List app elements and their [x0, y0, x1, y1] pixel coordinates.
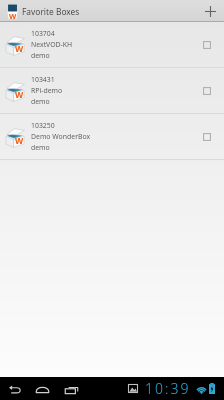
staticText: 10:39	[145, 379, 191, 398]
staticText: demo	[31, 51, 50, 60]
button[interactable]: Select 103704	[196, 34, 218, 56]
staticText: demo	[31, 143, 50, 152]
staticText: 103704	[31, 29, 55, 38]
staticText: W	[15, 43, 24, 55]
staticText: NextVOD-KH	[31, 40, 73, 49]
button[interactable]: W	[0, 22, 224, 68]
staticText: demo	[31, 97, 50, 106]
button[interactable]: Recent apps	[63, 379, 79, 399]
button[interactable]: Add favorite box	[199, 0, 221, 22]
button[interactable]: W	[0, 68, 224, 114]
button[interactable]: Back	[7, 379, 23, 399]
staticText: 103431	[31, 75, 55, 84]
button[interactable]: Select 103431	[196, 80, 218, 102]
staticText: 103250	[31, 121, 55, 130]
staticText: W	[15, 89, 24, 101]
button[interactable]: W	[0, 114, 224, 160]
staticText: W	[9, 11, 17, 21]
staticText: Favorite Boxes	[22, 6, 80, 17]
button[interactable]: Home	[34, 379, 50, 399]
staticText: W	[15, 135, 24, 147]
button[interactable]: Select 103250	[196, 126, 218, 148]
staticText: Demo WonderBox	[31, 132, 91, 141]
staticText: RPi-demo	[31, 86, 63, 95]
